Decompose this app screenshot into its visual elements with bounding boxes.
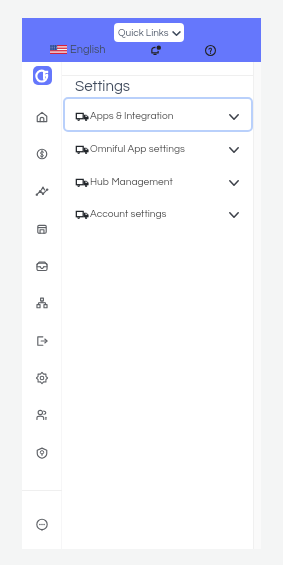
button[interactable]: Omniful logo	[33, 66, 52, 85]
staticText: Quick Links	[118, 28, 169, 38]
staticText: Apps & Integration	[90, 111, 174, 122]
staticText: English	[70, 44, 106, 55]
button[interactable]: Security	[35, 446, 49, 460]
button[interactable]: Inventory	[35, 259, 49, 273]
staticText: Omniful App settings	[90, 144, 185, 155]
button[interactable]: Hub Management	[63, 163, 253, 198]
button[interactable]: Support	[35, 518, 49, 532]
button[interactable]: Settings	[35, 371, 49, 385]
staticText: Settings	[75, 79, 131, 94]
button[interactable]: Apps & Integration	[63, 97, 253, 132]
button[interactable]: Home	[35, 110, 49, 124]
button[interactable]: Analytics	[35, 184, 49, 198]
button[interactable]: Notifications	[150, 45, 161, 56]
button[interactable]: Packages	[35, 334, 49, 348]
staticText: Hub Management	[90, 177, 173, 188]
button[interactable]: Customers	[35, 408, 49, 422]
button[interactable]: Billing	[35, 147, 49, 161]
staticText: Account settings	[90, 209, 167, 220]
button[interactable]: Hubs	[35, 296, 49, 310]
button[interactable]: Orders	[35, 222, 49, 236]
button[interactable]: Omniful App settings	[63, 130, 253, 165]
button[interactable]: Account settings	[63, 195, 253, 230]
button[interactable]: Quick Links	[114, 23, 184, 42]
button[interactable]: English	[50, 44, 106, 55]
button[interactable]: Help	[205, 45, 216, 56]
